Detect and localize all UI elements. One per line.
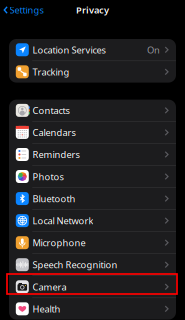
staticText: Privacy: [76, 4, 109, 16]
button[interactable]: Health: [9, 298, 176, 320]
button[interactable]: Photos: [9, 166, 176, 187]
staticText: Health: [32, 303, 60, 315]
button[interactable]: Speech Recognition: [9, 254, 176, 276]
staticText: Calendars: [32, 126, 75, 139]
staticText: Speech Recognition: [32, 258, 117, 271]
staticText: Contacts: [32, 104, 69, 117]
button[interactable]: Bluetooth: [9, 188, 176, 209]
button[interactable]: Settings: [0, 1, 43, 19]
button[interactable]: Tracking: [9, 61, 176, 83]
staticText: Location Services: [32, 44, 105, 56]
staticText: Reminders: [32, 148, 79, 161]
button[interactable]: Microphone: [9, 232, 176, 253]
button[interactable]: Reminders: [9, 144, 176, 165]
staticText: Photos: [32, 170, 63, 183]
button[interactable]: Location Services: [9, 39, 176, 61]
button[interactable]: Camera: [9, 276, 176, 298]
staticText: Local Network: [32, 214, 93, 227]
button[interactable]: Contacts: [9, 100, 176, 121]
staticText: Microphone: [32, 236, 85, 249]
button[interactable]: Calendars: [9, 122, 176, 143]
staticText: Bluetooth: [32, 192, 75, 205]
staticText: On: [147, 44, 160, 56]
staticText: Settings: [9, 4, 43, 16]
staticText: Tracking: [32, 66, 69, 78]
button[interactable]: Local Network: [9, 210, 176, 231]
staticText: Camera: [32, 281, 66, 293]
